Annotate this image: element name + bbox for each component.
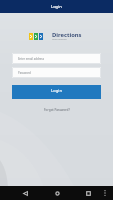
button[interactable]: Home xyxy=(49,186,65,200)
button[interactable]: Forgot Password? xyxy=(42,106,72,114)
staticText: north america xyxy=(52,38,67,41)
button[interactable]: Recents xyxy=(80,186,96,200)
button[interactable]: Login xyxy=(0,0,113,13)
button[interactable]: Enter email address xyxy=(12,53,101,64)
staticText: Login xyxy=(51,4,62,9)
button[interactable]: Back xyxy=(17,186,33,200)
staticText: Password xyxy=(18,71,31,75)
button[interactable]: Password xyxy=(12,67,101,78)
staticText: Login xyxy=(51,88,62,94)
button[interactable]: More options xyxy=(100,186,110,200)
staticText: Directions xyxy=(52,31,82,39)
staticText: Enter email address xyxy=(18,57,45,61)
button[interactable]: Login xyxy=(12,85,101,99)
